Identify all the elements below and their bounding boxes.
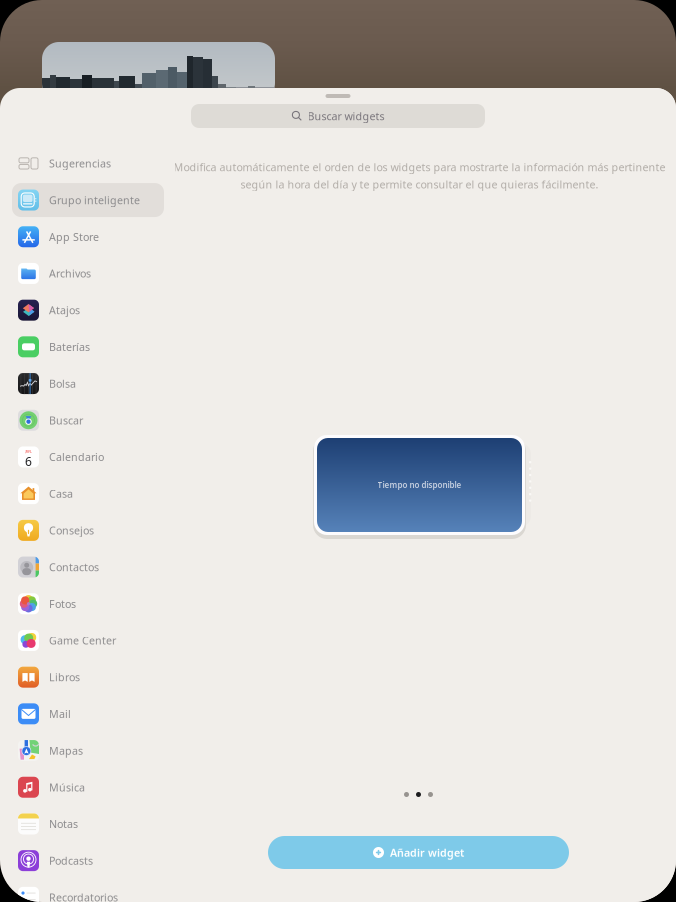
staticText: Recordatorios [49, 890, 118, 902]
button[interactable]: App Store [0, 218, 169, 255]
staticText: Contactos [49, 560, 99, 574]
button[interactable]: Atajos [0, 292, 169, 328]
button[interactable]: Casa [0, 475, 169, 512]
staticText: Archivos [49, 266, 91, 281]
button[interactable]: Bolsa [0, 365, 169, 402]
staticText: Game Center [49, 633, 116, 648]
staticText: Notas [49, 817, 78, 831]
staticText: Atajos [49, 303, 80, 317]
button[interactable]: Baterías [0, 328, 169, 365]
button[interactable]: Recordatorios [0, 879, 169, 902]
staticText: Música [49, 780, 85, 794]
button[interactable]: Archivos [0, 255, 169, 292]
staticText: Podcasts [49, 854, 93, 868]
staticText: 6 [25, 453, 32, 469]
button[interactable]: Música [0, 769, 169, 806]
button[interactable]: Notas [0, 806, 169, 842]
button[interactable]: Grupo inteligente [0, 182, 169, 218]
button[interactable]: Mapas [0, 732, 169, 769]
button[interactable]: Mail [0, 695, 169, 732]
staticText: Sugerencias [49, 156, 111, 170]
button[interactable]: Consejos [0, 512, 169, 549]
button[interactable]: Contactos [0, 549, 169, 585]
staticText: Tiempo no disponible [377, 480, 461, 490]
button[interactable]: Libros [0, 659, 169, 695]
button[interactable]: Game Center [0, 622, 169, 659]
button[interactable]: Fotos [0, 585, 169, 622]
staticText: Bolsa [49, 376, 76, 391]
staticText: Añadir widget [390, 845, 464, 860]
staticText: Modifica automáticamente el orden de los… [173, 160, 665, 174]
staticText: Grupo inteligente [49, 193, 140, 207]
staticText: Baterías [49, 340, 90, 354]
staticText: Mapas [49, 743, 83, 758]
button[interactable]: JUL [0, 439, 169, 475]
staticText: Libros [49, 670, 80, 684]
staticText: Fotos [49, 597, 76, 611]
button[interactable]: Podcasts [0, 842, 169, 879]
staticText: según la hora del día y te permite consu… [240, 177, 598, 191]
button[interactable]: Buscar widgets [191, 104, 485, 128]
staticText: Mail [49, 707, 71, 721]
staticText: Calendario [49, 450, 104, 464]
button[interactable]: Añadir widget [268, 836, 569, 869]
staticText: Casa [49, 487, 73, 501]
button[interactable]: Buscar [0, 402, 169, 439]
staticText: App Store [49, 230, 99, 244]
staticText: Buscar widgets [307, 109, 384, 123]
staticText: JUL [25, 448, 31, 454]
staticText: Consejos [49, 523, 94, 537]
button[interactable]: Sugerencias [0, 145, 169, 182]
staticText: Buscar [49, 413, 83, 427]
